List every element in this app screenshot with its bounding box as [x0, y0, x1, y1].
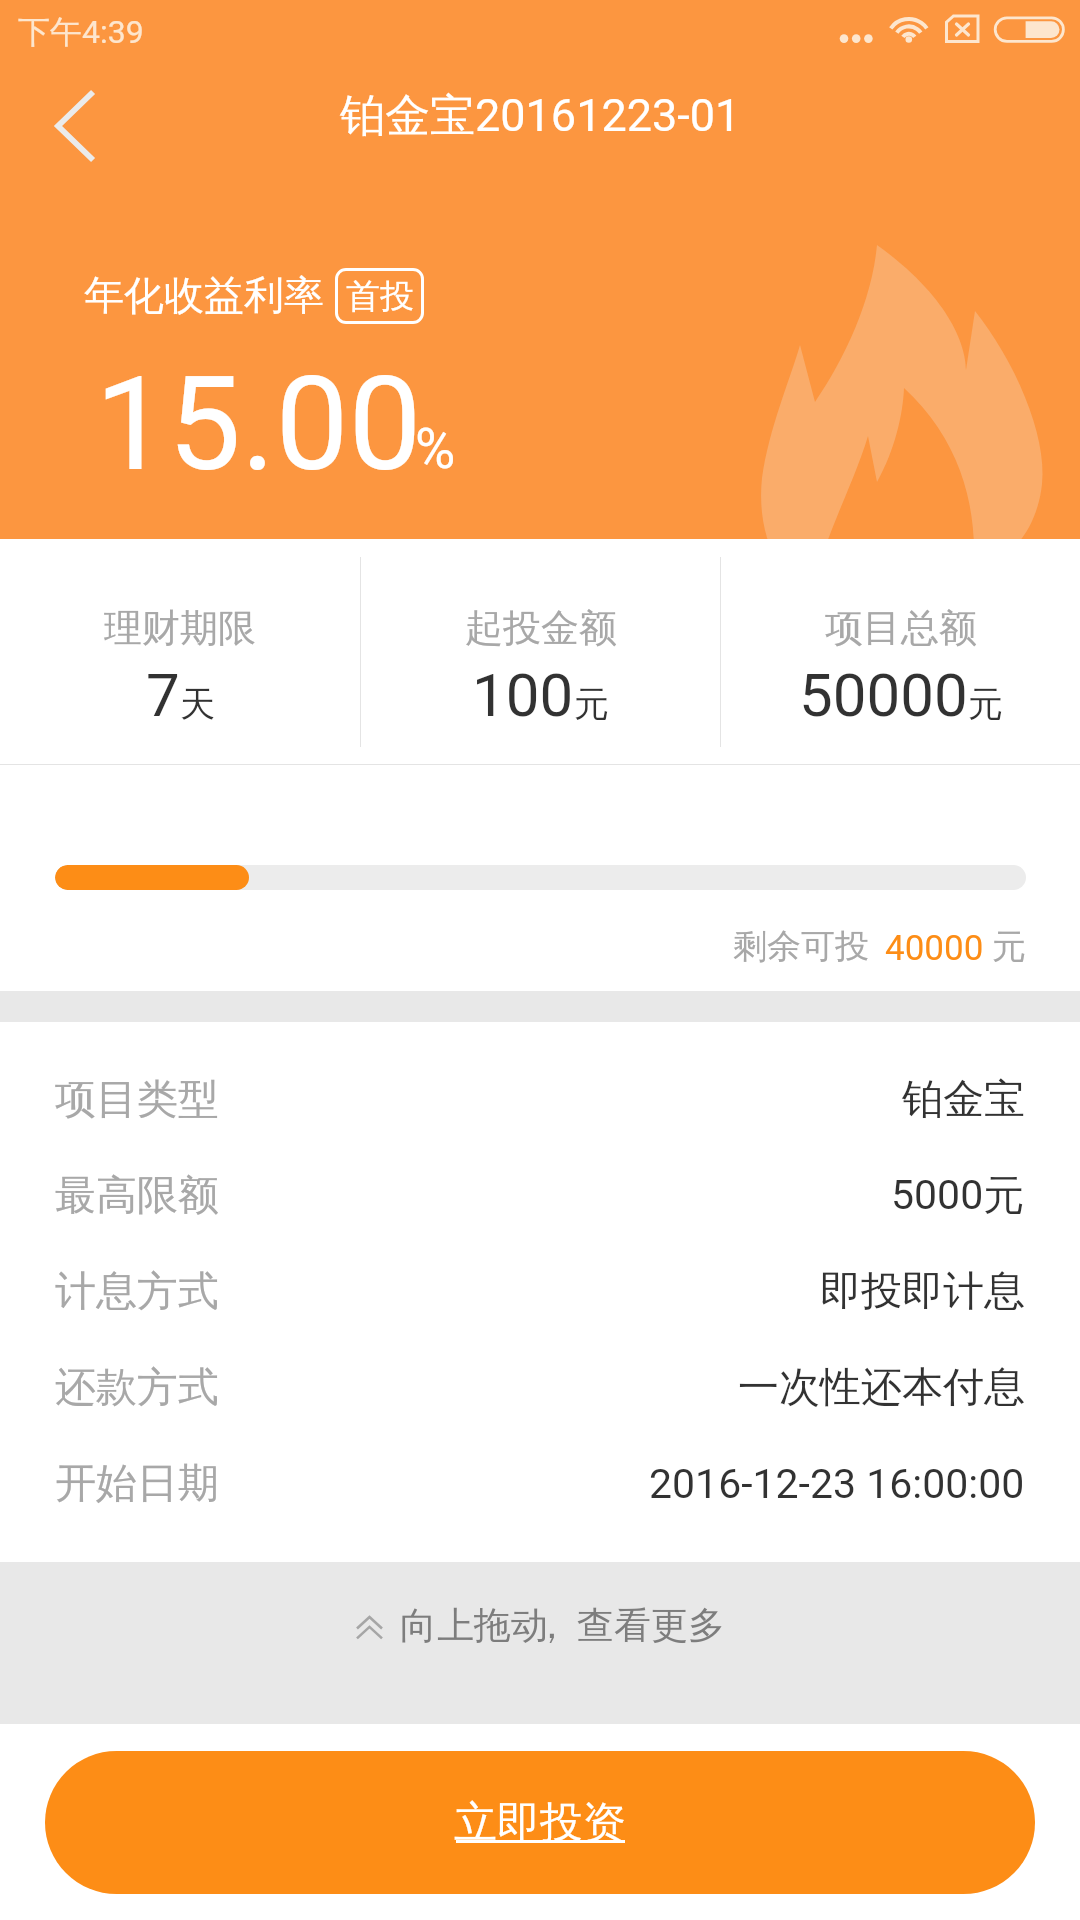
- staticText: 即投即计息: [820, 1266, 1025, 1318]
- staticText: 查看更多: [577, 1602, 725, 1649]
- staticText: 首投: [346, 275, 414, 318]
- staticText: 立即投资: [454, 1796, 626, 1850]
- staticText: 15.00: [95, 348, 422, 500]
- staticText: 还款方式: [55, 1362, 219, 1414]
- staticText: 向上拖动: [400, 1602, 548, 1649]
- staticText: 项目总额: [825, 604, 977, 652]
- button[interactable]: 立即投资: [45, 1751, 1035, 1894]
- staticText: %: [415, 417, 456, 481]
- staticText: 项目类型: [55, 1074, 219, 1126]
- staticText: 元: [992, 925, 1026, 968]
- button[interactable]: 计息方式: [55, 1244, 1025, 1340]
- staticText: 一次性还本付息: [738, 1362, 1025, 1414]
- staticText: 40000: [885, 928, 984, 969]
- button[interactable]: 向上拖动: [0, 1562, 1080, 1724]
- staticText: 7: [146, 660, 180, 730]
- button[interactable]: 最高限额: [55, 1148, 1025, 1244]
- staticText: 2016-12-23 16:00:00: [649, 1460, 1025, 1508]
- staticText: 铂金宝20161223-01: [340, 88, 741, 145]
- staticText: 最高限额: [55, 1170, 219, 1222]
- staticText: 50000: [799, 660, 968, 730]
- button[interactable]: 项目类型: [55, 1052, 1025, 1148]
- staticText: 开始日期: [55, 1458, 219, 1510]
- staticText: 理财期限: [104, 604, 256, 652]
- staticText: ，: [533, 1602, 570, 1649]
- button[interactable]: 还款方式: [55, 1340, 1025, 1436]
- staticText: 元: [968, 682, 1003, 726]
- staticText: 元: [574, 682, 609, 726]
- staticText: 100: [472, 660, 574, 730]
- button[interactable]: 开始日期: [55, 1436, 1025, 1532]
- staticText: 年化收益利率: [84, 270, 324, 320]
- staticText: 5000元: [891, 1170, 1025, 1222]
- staticText: 下午4:39: [18, 12, 144, 52]
- staticText: 剩余可投: [733, 925, 869, 968]
- staticText: 铂金宝: [902, 1074, 1025, 1126]
- staticText: 起投金额: [465, 604, 617, 652]
- staticText: 天: [180, 682, 215, 726]
- button[interactable]: Back: [8, 76, 108, 176]
- staticText: 计息方式: [55, 1266, 219, 1318]
